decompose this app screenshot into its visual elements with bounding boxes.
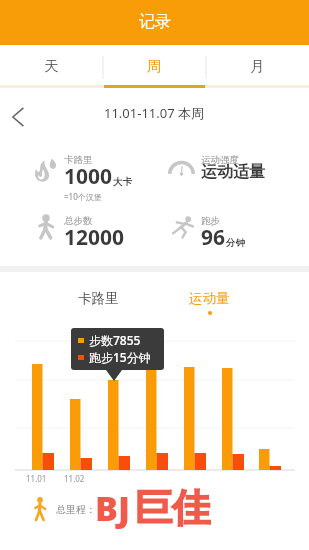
button[interactable]: 卡路里 xyxy=(62,282,135,315)
staticText: 周 xyxy=(147,57,162,75)
staticText: 卡路里 xyxy=(78,290,119,307)
staticText: 步数7855 xyxy=(89,332,141,348)
staticText: 总里程： xyxy=(56,503,96,516)
staticText: 记录 xyxy=(139,12,171,32)
staticText: 1000 xyxy=(64,162,113,191)
staticText: =10个汉堡 xyxy=(64,191,102,202)
staticText: 运动量 xyxy=(189,290,230,307)
staticText: 大卡 xyxy=(113,176,132,188)
staticText: 分钟 xyxy=(226,237,245,249)
staticText: 卡路里 xyxy=(64,154,93,166)
staticText: 月 xyxy=(250,57,265,75)
button[interactable]: Back xyxy=(0,96,42,138)
staticText: 运动适量 xyxy=(201,162,265,182)
staticText: 巨佳 xyxy=(134,484,210,532)
button[interactable]: 运动量 xyxy=(173,282,246,323)
staticText: 11.02 xyxy=(64,473,85,484)
staticText: 总步数 xyxy=(64,215,93,227)
button[interactable]: 总里程： xyxy=(30,494,96,524)
staticText: 11.01 xyxy=(26,473,47,484)
staticText: 跑步 xyxy=(201,215,220,227)
staticText: 天 xyxy=(44,57,59,75)
staticText: 运动强度 xyxy=(201,154,239,166)
button[interactable]: 周 xyxy=(103,45,206,89)
staticText: 12000 xyxy=(64,223,125,252)
staticText: 11.01-11.07 本周 xyxy=(104,104,205,122)
staticText: 跑步15分钟 xyxy=(89,349,151,365)
button[interactable]: 天 xyxy=(0,45,103,89)
staticText: 96 xyxy=(201,223,226,252)
button[interactable]: 月 xyxy=(206,45,309,89)
staticText: BJ xyxy=(95,485,130,531)
